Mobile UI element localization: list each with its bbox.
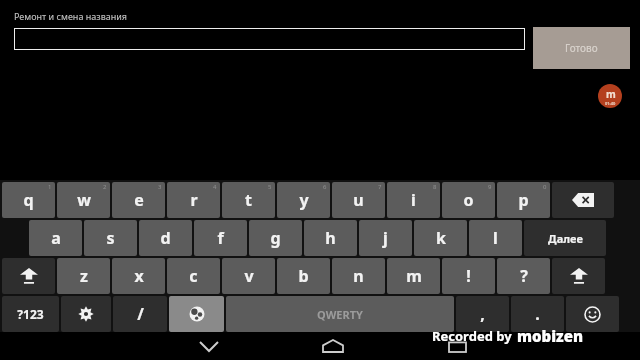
button[interactable]: j [359,220,412,256]
staticText: ?123 [17,306,44,322]
staticText: m [606,87,616,101]
button[interactable]: Backspace [552,182,614,218]
button[interactable]: ! [442,258,495,294]
staticText: Recorded by [432,327,512,345]
staticText: q [23,189,34,211]
staticText: m [406,265,422,287]
staticText: 7 [378,183,382,191]
staticText: f [217,227,224,249]
button[interactable]: Recent apps [428,332,486,360]
button[interactable]: d [139,220,192,256]
staticText: 6 [323,183,327,191]
button[interactable]: u [332,182,385,218]
button[interactable]: m [387,258,440,294]
button[interactable]: o [442,182,495,218]
button[interactable]: l [469,220,522,256]
button[interactable]: g [249,220,302,256]
button[interactable]: a [29,220,82,256]
button[interactable]: Home [304,332,362,360]
button[interactable]: r [167,182,220,218]
button[interactable]: k [414,220,467,256]
staticText: Ремонт и смена названия [14,10,128,22]
staticText: ! [466,265,471,287]
staticText: p [518,189,529,211]
staticText: w [77,189,91,211]
staticText: 1 [48,183,52,191]
button[interactable]: Settings [61,296,111,332]
staticText: o [463,189,474,211]
button[interactable]: Далее [524,220,606,256]
button[interactable] [14,28,525,50]
button[interactable]: f [194,220,247,256]
staticText: c [189,265,198,287]
staticText: i [411,189,416,211]
staticText: Готово [565,41,598,55]
button[interactable]: n [332,258,385,294]
button[interactable]: Готово [533,27,630,69]
staticText: s [106,227,115,249]
staticText: 3 [158,183,162,191]
button[interactable]: Shift [2,258,55,294]
button[interactable]: Change language [169,296,224,332]
staticText: b [298,265,309,287]
button[interactable]: Shift [552,258,605,294]
button[interactable]: Hide keyboard [180,332,238,360]
staticText: a [51,227,61,249]
staticText: v [244,265,254,287]
staticText: k [436,227,446,249]
button[interactable]: ?123 [2,296,59,332]
staticText: 0 [543,183,547,191]
button[interactable]: x [112,258,165,294]
button[interactable]: i [387,182,440,218]
button[interactable]: c [167,258,220,294]
staticText: h [325,227,336,249]
button[interactable]: p [497,182,550,218]
staticText: 8 [433,183,437,191]
button[interactable]: t [222,182,275,218]
button[interactable]: , [456,296,509,332]
staticText: d [160,227,171,249]
staticText: 01:40 [605,101,616,106]
staticText: e [134,189,144,211]
button[interactable]: Emoji [566,296,619,332]
button[interactable]: e [112,182,165,218]
staticText: y [299,189,309,211]
staticText: 4 [213,183,217,191]
staticText: mobizen [517,326,584,346]
button[interactable]: ? [497,258,550,294]
staticText: / [137,303,144,325]
staticText: ? [520,265,528,287]
staticText: , [480,303,485,325]
button[interactable]: QWERTY [226,296,454,332]
staticText: g [270,227,281,249]
button[interactable]: . [511,296,564,332]
staticText: z [80,265,88,287]
staticText: 2 [103,183,107,191]
button[interactable]: / [113,296,167,332]
staticText: u [353,189,364,211]
staticText: n [353,265,364,287]
staticText: Далее [548,231,583,246]
staticText: 9 [488,183,492,191]
button[interactable]: s [84,220,137,256]
staticText: t [245,189,252,211]
staticText: l [493,227,498,249]
staticText: r [190,189,198,211]
button[interactable]: y [277,182,330,218]
staticText: . [535,303,540,325]
button[interactable]: w [57,182,110,218]
button[interactable]: q [2,182,55,218]
staticText: QWERTY [317,307,363,322]
button[interactable]: b [277,258,330,294]
staticText: x [134,265,144,287]
staticText: 5 [268,183,272,191]
staticText: j [383,227,388,249]
button[interactable]: v [222,258,275,294]
button[interactable]: h [304,220,357,256]
button[interactable]: z [57,258,110,294]
